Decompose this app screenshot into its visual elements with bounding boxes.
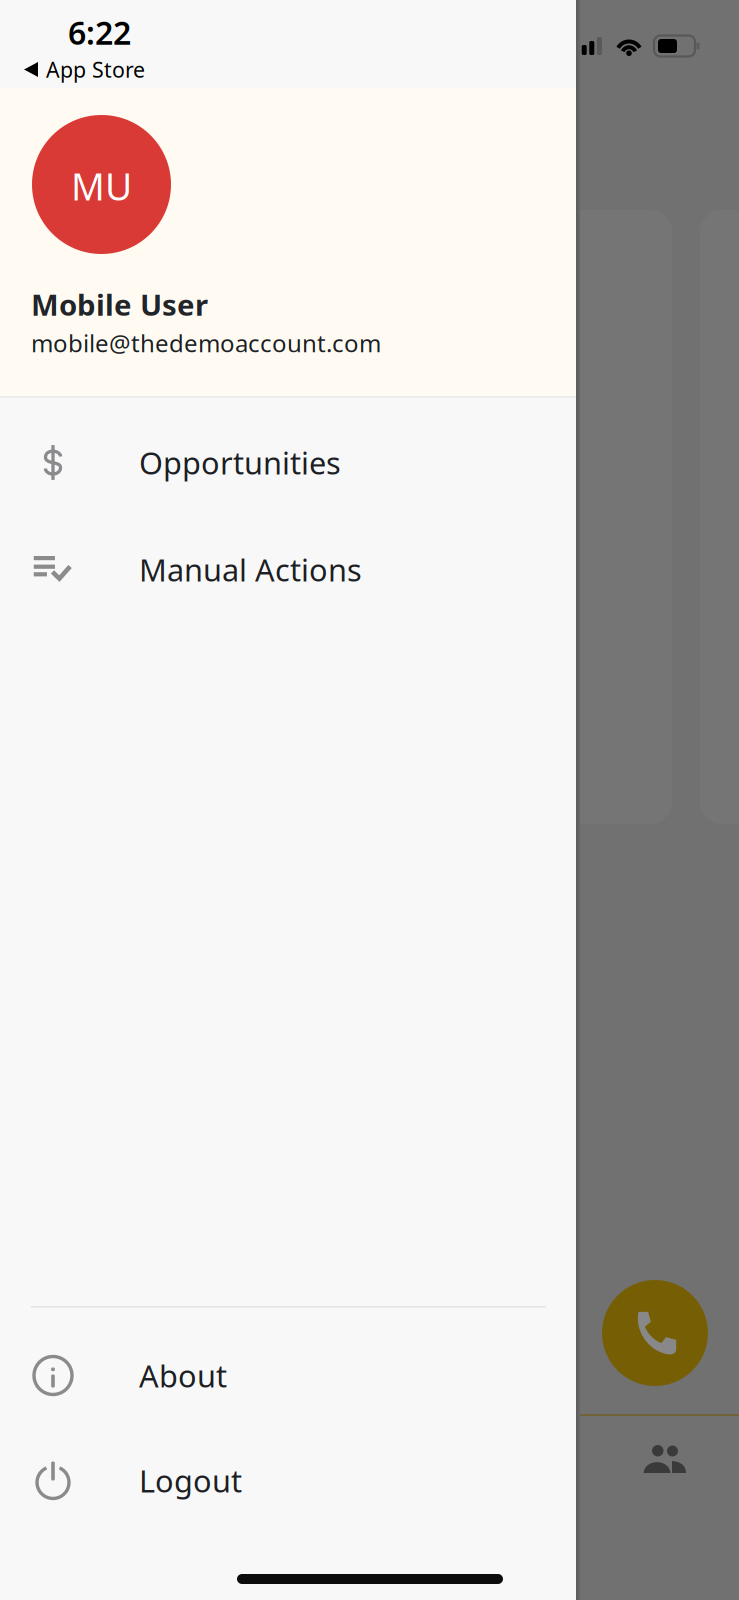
button[interactable]: App Store bbox=[0, 53, 576, 85]
button[interactable]: Call bbox=[602, 1280, 708, 1386]
button[interactable]: Opportunities bbox=[0, 409, 576, 516]
staticText: Opportunities bbox=[139, 442, 341, 483]
button[interactable]: Logout bbox=[0, 1428, 576, 1533]
staticText: App Store bbox=[46, 55, 145, 84]
staticText: MU bbox=[71, 161, 132, 211]
staticText: Logout bbox=[139, 1460, 242, 1501]
staticText: Mobile User bbox=[31, 285, 208, 324]
button[interactable]: Contacts bbox=[615, 1431, 715, 1487]
button[interactable]: About bbox=[0, 1323, 576, 1428]
staticText: mobile@thedemoaccount.com bbox=[31, 327, 381, 359]
staticText: About bbox=[139, 1355, 227, 1396]
staticText: 6:22 bbox=[68, 11, 131, 53]
staticText: Manual Actions bbox=[139, 549, 362, 590]
button[interactable]: Manual Actions bbox=[0, 516, 576, 623]
